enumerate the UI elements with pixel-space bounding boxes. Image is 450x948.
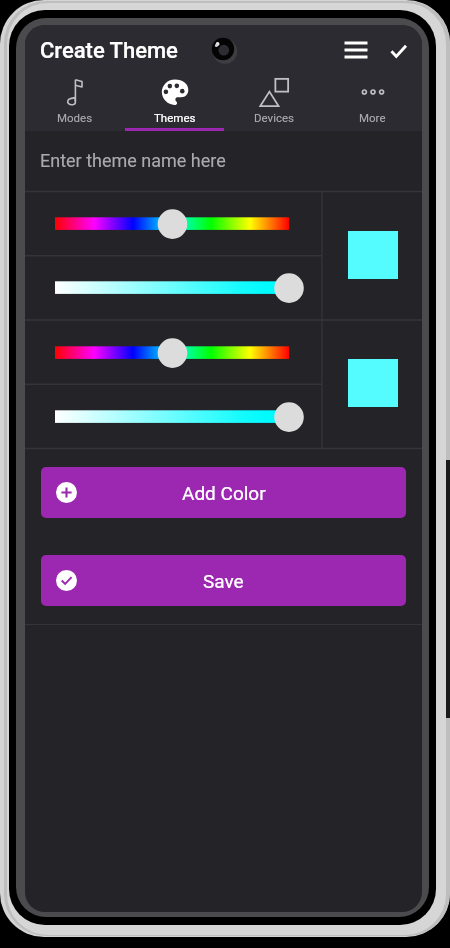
- staticText: Add Color: [182, 482, 266, 504]
- button[interactable]: [25, 254, 322, 318]
- button[interactable]: Enter theme name here: [25, 131, 422, 190]
- staticText: Modes: [57, 111, 93, 124]
- button[interactable]: Add Color: [41, 467, 406, 518]
- button[interactable]: Modes: [25, 72, 125, 131]
- button[interactable]: Save theme: [376, 29, 416, 69]
- button[interactable]: Menu: [336, 29, 376, 69]
- staticText: Themes: [154, 111, 196, 124]
- staticText: Save: [203, 570, 244, 592]
- button[interactable]: [25, 319, 322, 383]
- staticText: Enter theme name here: [40, 150, 226, 171]
- staticText: Devices: [254, 111, 294, 124]
- button[interactable]: Themes: [125, 72, 224, 131]
- button[interactable]: [25, 383, 322, 447]
- button[interactable]: Save: [41, 555, 406, 606]
- button[interactable]: Devices: [224, 72, 323, 131]
- button[interactable]: [25, 190, 322, 254]
- button[interactable]: More: [323, 72, 422, 131]
- staticText: More: [359, 111, 386, 124]
- staticText: Create Theme: [40, 38, 178, 64]
